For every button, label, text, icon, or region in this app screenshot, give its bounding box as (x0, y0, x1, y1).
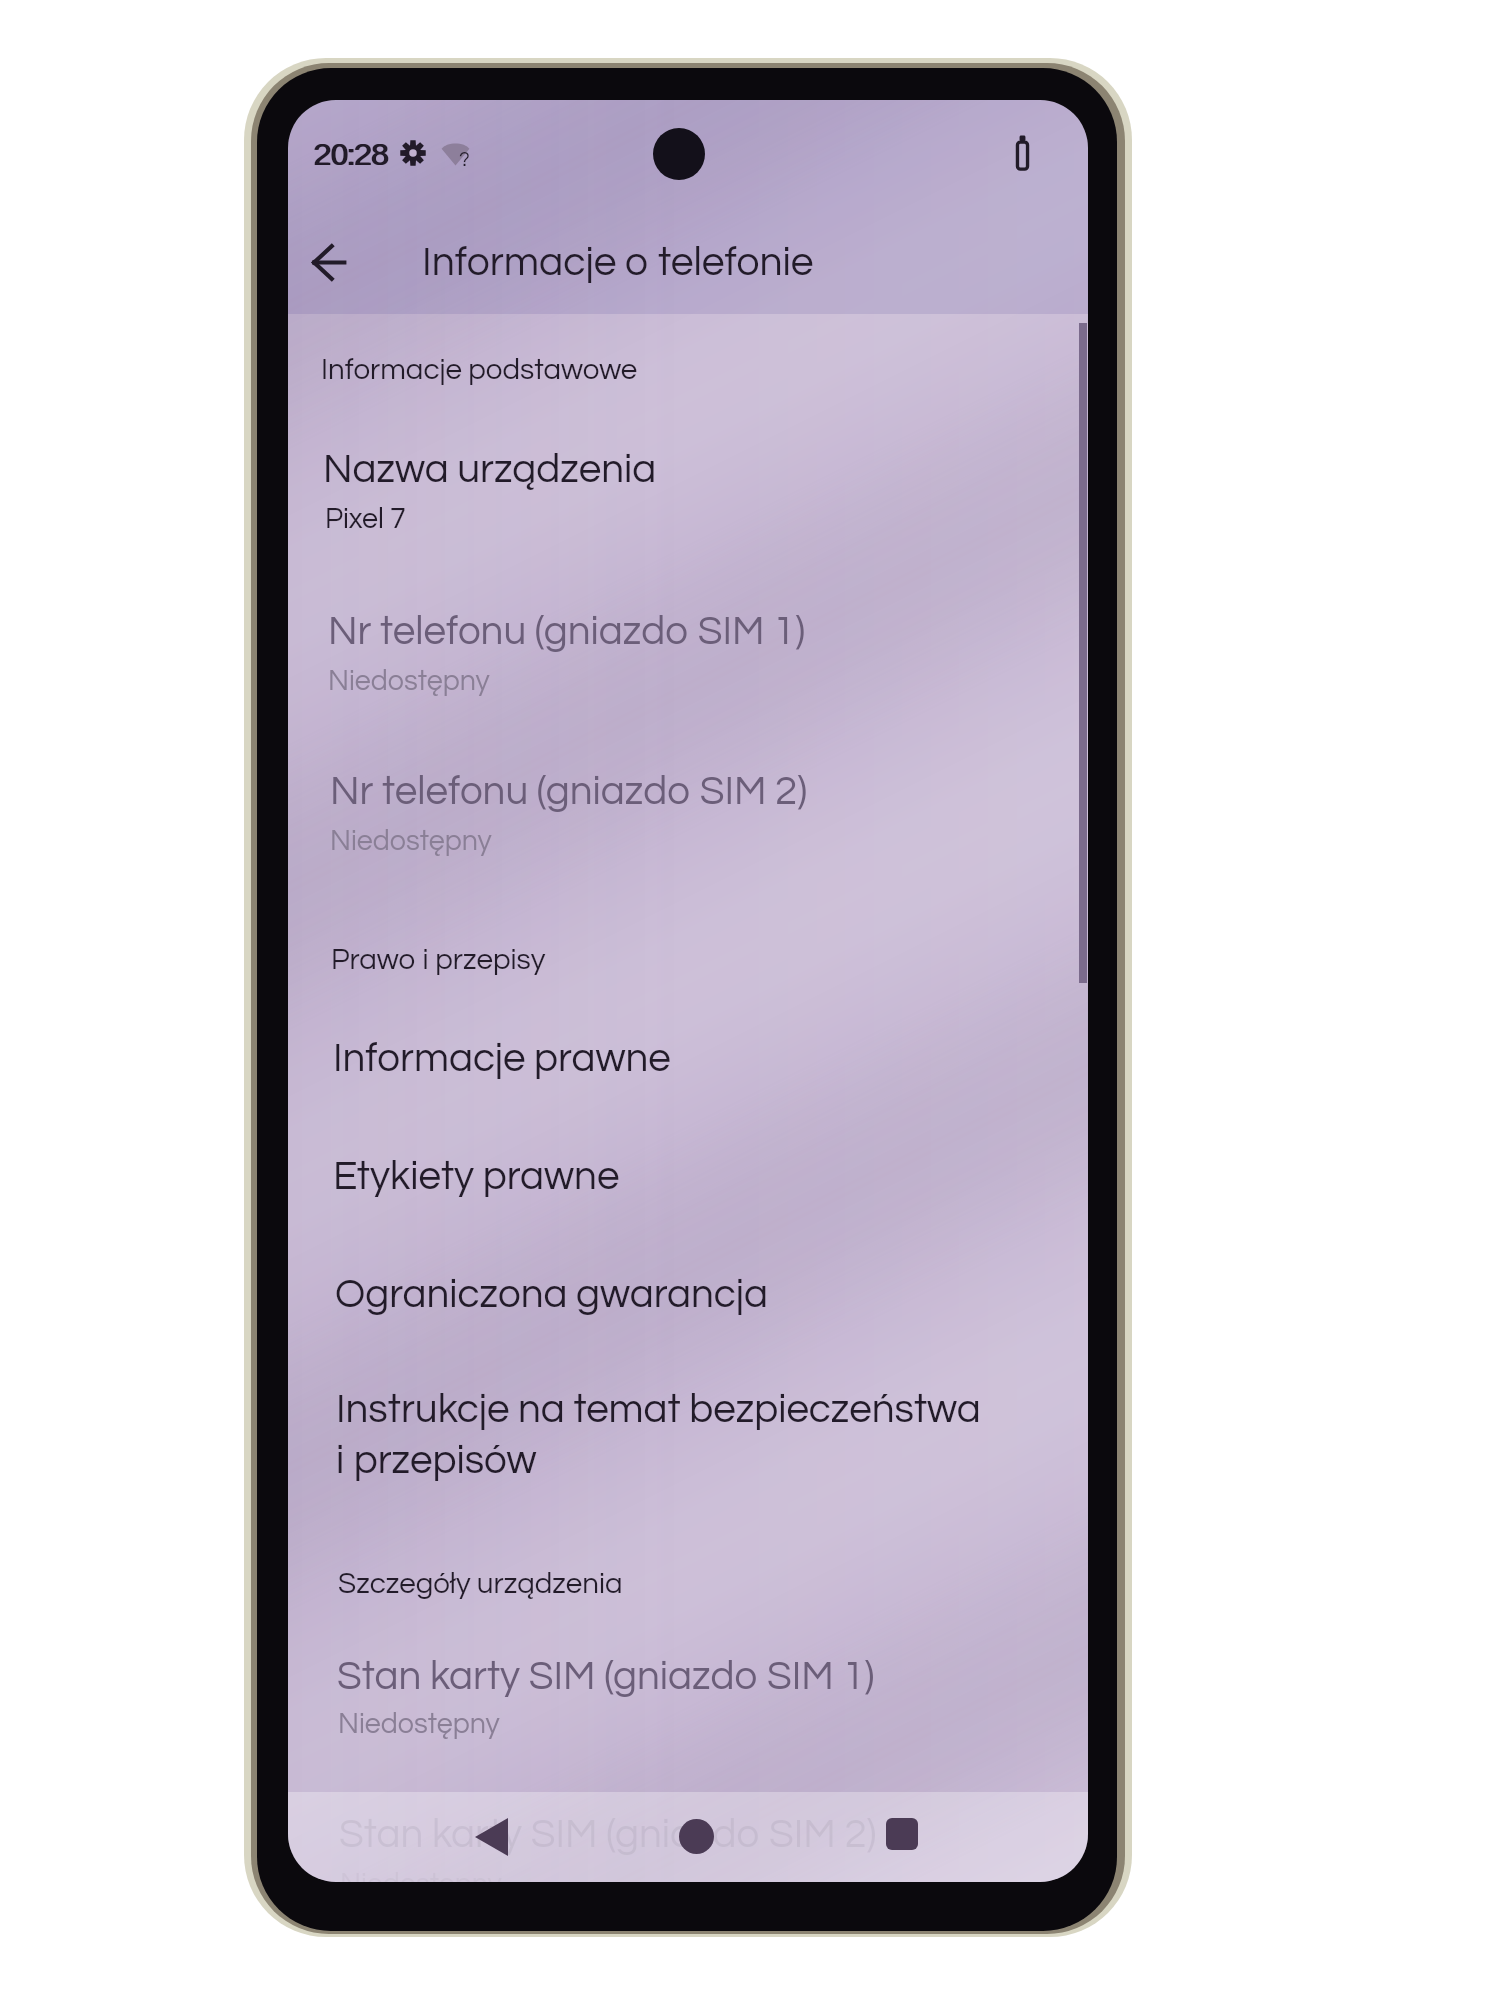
staticText: Nr telefonu (gniazdo SIM 2) (330, 771, 808, 813)
staticText: Informacje prawne (333, 1038, 671, 1080)
staticText: Stan karty SIM (gniazdo SIM 2) (339, 1814, 877, 1856)
staticText: 20:28 (313, 140, 388, 172)
staticText: Instrukcje na temat bezpieczeństwa (336, 1389, 981, 1431)
staticText: Nazwa urządzenia (323, 449, 657, 491)
staticText: Pixel 7 (325, 505, 406, 534)
button[interactable] (288, 1139, 1088, 1235)
button[interactable] (288, 1641, 1088, 1759)
button[interactable]: Wstecz (292, 225, 366, 299)
staticText: Ograniczona gwarancja (335, 1274, 769, 1316)
button[interactable] (288, 1799, 1088, 1882)
button[interactable] (288, 1423, 1088, 1519)
button[interactable]: Ekran główny (662, 1802, 730, 1870)
button[interactable] (288, 434, 1088, 552)
staticText: Niedostępny (330, 827, 492, 856)
staticText: Nr telefonu (gniazdo SIM 1) (328, 611, 806, 653)
button[interactable] (288, 1372, 1088, 1468)
button[interactable] (288, 756, 1088, 874)
staticText: Szczegóły urządzenia (338, 1569, 623, 1599)
button[interactable]: Wstecz (457, 1803, 525, 1871)
button[interactable] (288, 1257, 1088, 1353)
staticText: 20:28 (314, 140, 389, 172)
staticText: 20:28 (315, 140, 390, 172)
staticText: Informacje o telefonie (422, 242, 814, 284)
staticText: Niedostępny (328, 667, 490, 696)
button[interactable]: Ostatnie aplikacje (868, 1800, 936, 1868)
staticText: Stan karty SIM (gniazdo SIM 1) (337, 1656, 875, 1698)
staticText: ? (459, 149, 470, 171)
staticText: Niedostępny (338, 1710, 500, 1739)
button[interactable] (288, 596, 1088, 714)
staticText: i przepisów (336, 1440, 537, 1482)
staticText: Prawo i przepisy (331, 945, 546, 975)
staticText: Informacje podstawowe (321, 355, 638, 385)
staticText: Etykiety prawne (333, 1156, 620, 1198)
button[interactable] (288, 1021, 1088, 1117)
